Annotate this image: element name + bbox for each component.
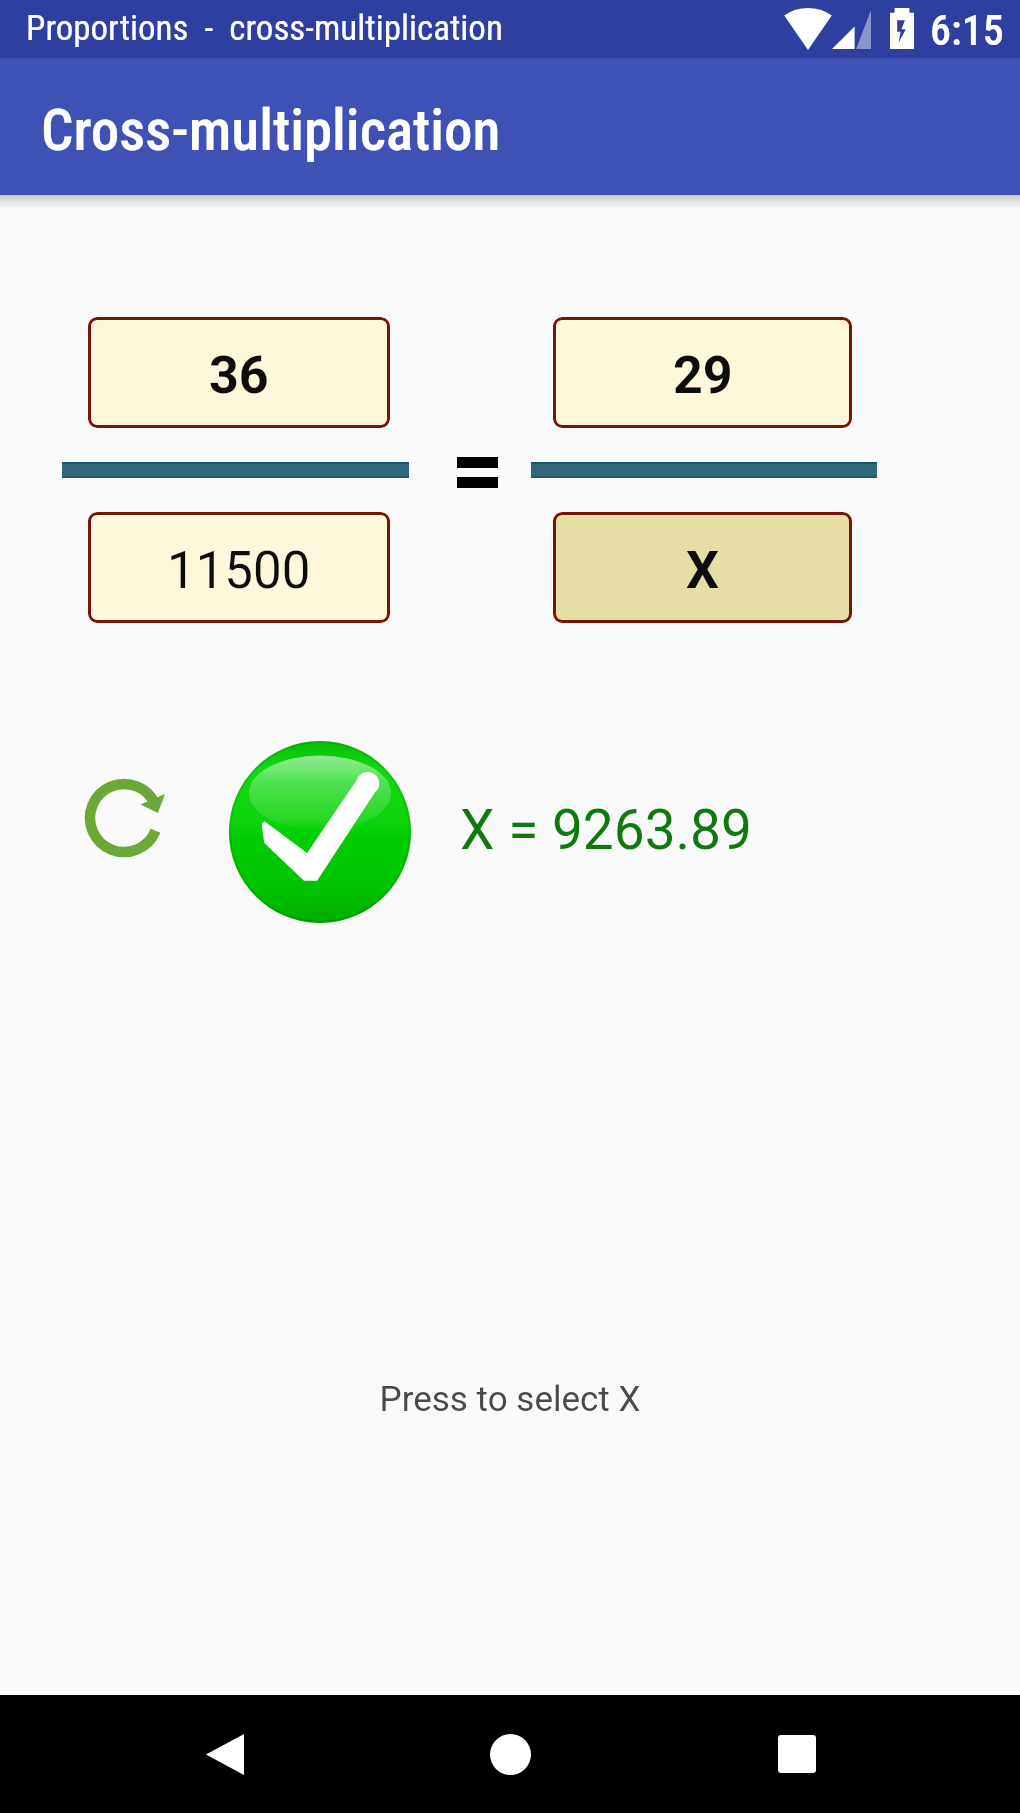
staticText: 11500	[167, 541, 311, 601]
button[interactable]: Result correct	[229, 741, 411, 923]
staticText: Cross-multiplication	[41, 97, 501, 164]
staticText: X	[686, 540, 720, 601]
staticText: X = 9263.89	[460, 798, 752, 862]
staticText: Press to select X	[0, 1379, 1020, 1420]
staticText: 29	[673, 345, 733, 406]
button[interactable]: X	[553, 512, 852, 623]
staticText: 36	[209, 345, 269, 406]
staticText: 6:15	[930, 6, 1004, 55]
staticText: Proportions - cross-multiplication	[26, 8, 503, 49]
button[interactable]: Reset	[75, 769, 173, 867]
button[interactable]: Home	[451, 1695, 569, 1813]
button[interactable]: 11500	[88, 512, 390, 623]
button[interactable]: 29	[553, 317, 852, 428]
button[interactable]: 36	[88, 317, 390, 428]
button[interactable]: Recent apps	[736, 1695, 854, 1813]
button[interactable]: Back	[167, 1695, 285, 1813]
